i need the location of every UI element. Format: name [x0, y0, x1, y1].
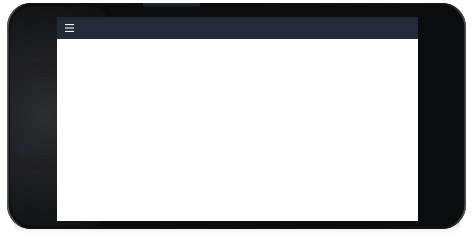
- button[interactable]: Open navigation menu: [61, 19, 77, 37]
